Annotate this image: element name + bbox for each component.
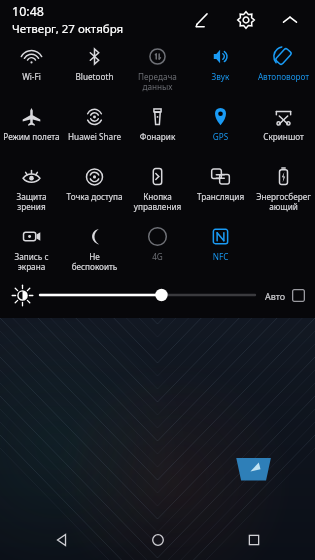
button[interactable]: Трансляция	[189, 160, 252, 220]
staticText: Кнопка управления	[127, 191, 188, 212]
staticText: Защита зрения	[1, 191, 62, 212]
staticText: Режим полета	[1, 131, 62, 142]
button[interactable]: NFC	[189, 220, 252, 278]
staticText: Автоповорот	[253, 71, 314, 82]
button[interactable]: Edit	[189, 7, 215, 33]
button[interactable]: GPS	[189, 100, 252, 160]
staticText: Huawei Share	[64, 131, 125, 142]
button[interactable]: Режим полета	[0, 100, 63, 160]
staticText: NFC	[190, 251, 251, 262]
button[interactable]: Энергосберег ающий	[252, 160, 315, 220]
button[interactable]: Settings	[233, 7, 259, 33]
button[interactable]: Brightness	[10, 283, 34, 307]
button[interactable]: Фонарик	[126, 100, 189, 160]
staticText: Точка доступа	[64, 191, 125, 202]
button[interactable]: Кнопка управления	[126, 160, 189, 220]
staticText: 4G	[127, 251, 188, 262]
staticText: Четверг, 27 октября	[12, 21, 124, 37]
button[interactable]: Brightness slider	[40, 283, 255, 307]
button[interactable]: Huawei Share	[63, 100, 126, 160]
button[interactable]: Bluetooth	[63, 40, 126, 100]
button[interactable]: Wi-Fi	[0, 40, 63, 100]
button[interactable]: Скриншот	[252, 100, 315, 160]
button[interactable]: Back	[42, 520, 82, 560]
button[interactable]: Авто	[265, 289, 305, 302]
button[interactable]: Запись с экрана	[0, 220, 63, 278]
staticText: Трансляция	[190, 191, 251, 202]
button[interactable]: Collapse	[277, 7, 303, 33]
staticText: GPS	[190, 131, 251, 142]
staticText: Скриншот	[253, 131, 314, 142]
staticText: Передача данных	[127, 71, 188, 92]
button[interactable]: Передача данных	[126, 40, 189, 100]
staticText: Фонарик	[127, 131, 188, 142]
staticText: Bluetooth	[64, 71, 125, 82]
staticText: Звук	[190, 71, 251, 82]
button[interactable]: Автоповорот	[252, 40, 315, 100]
button[interactable]: Recents	[234, 520, 274, 560]
staticText: Запись с экрана	[1, 251, 62, 272]
button[interactable]: Не беспокоить	[63, 220, 126, 278]
staticText: 10:48	[12, 3, 44, 20]
staticText: Энергосберег ающий	[253, 191, 314, 212]
button[interactable]: 4G	[126, 220, 189, 278]
button[interactable]: Home	[138, 520, 178, 560]
staticText: Не беспокоить	[64, 251, 125, 272]
button[interactable]: Защита зрения	[0, 160, 63, 220]
staticText: Авто	[265, 290, 286, 302]
staticText: Wi-Fi	[1, 71, 62, 82]
button[interactable]: Звук	[189, 40, 252, 100]
button[interactable]: Точка доступа	[63, 160, 126, 220]
